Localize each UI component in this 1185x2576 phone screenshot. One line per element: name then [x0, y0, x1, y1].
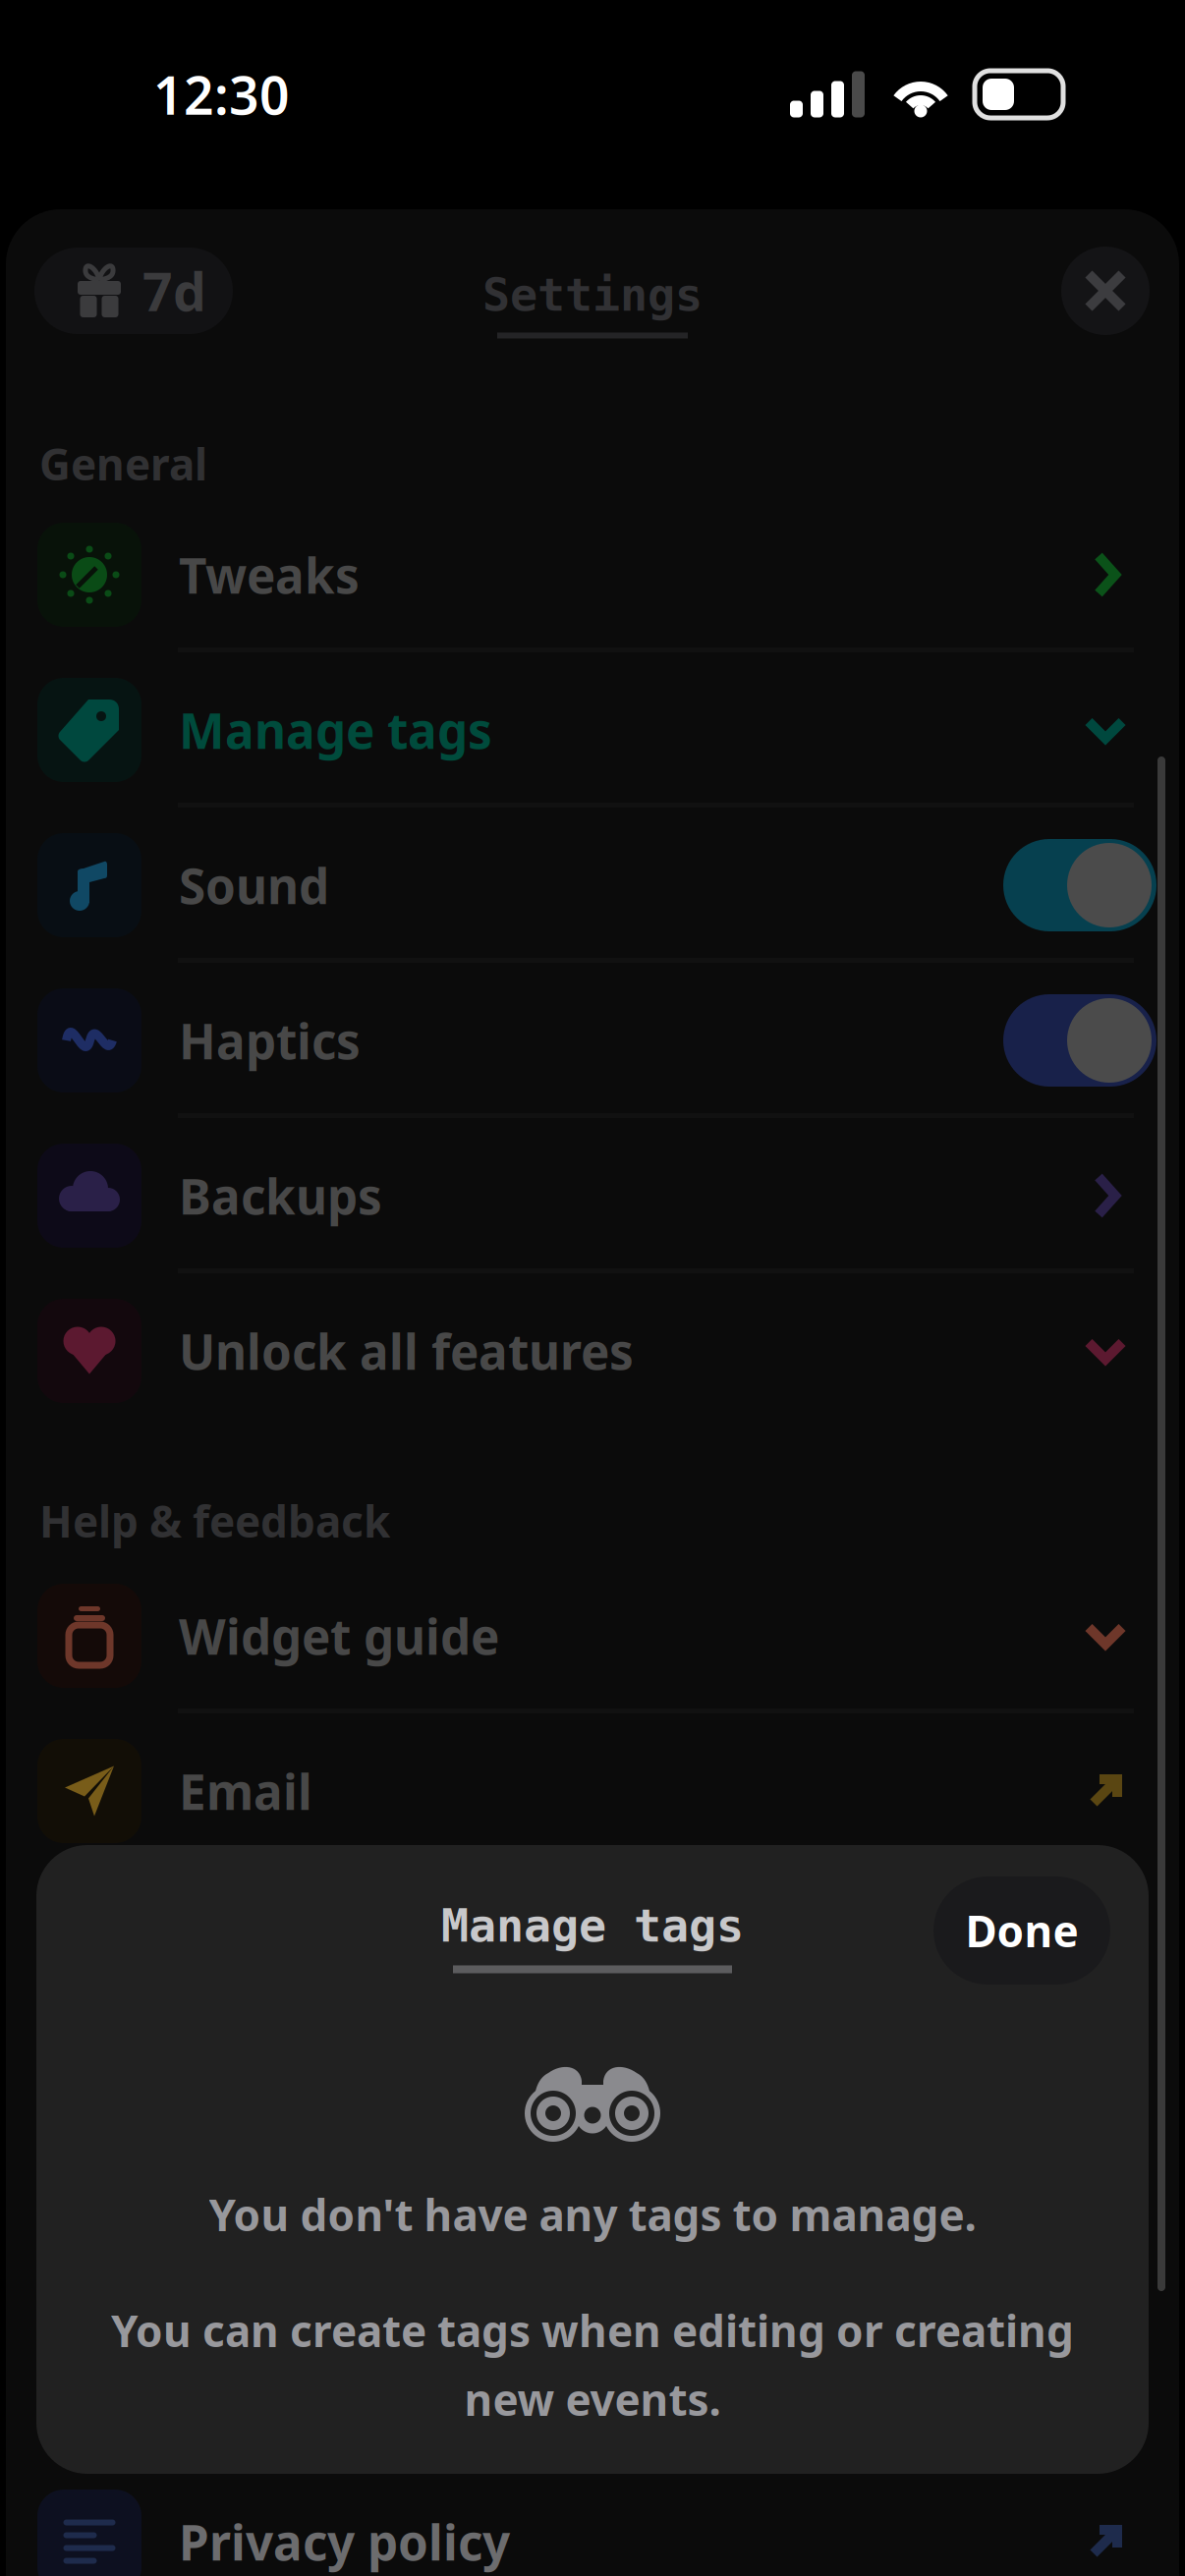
button[interactable]: Widget guide [6, 1558, 1179, 1713]
staticText: Manage tags [179, 698, 492, 762]
staticText: General [39, 435, 207, 492]
button[interactable]: Backups [6, 1118, 1179, 1273]
staticText: You don't have any tags to manage. [209, 2186, 976, 2243]
staticText: Email [179, 1759, 312, 1823]
button[interactable]: Haptics [6, 963, 1179, 1118]
button[interactable]: Sound [6, 808, 1179, 963]
staticText: Help & feedback [39, 1492, 390, 1550]
button[interactable]: Privacy policy [6, 2464, 1179, 2576]
staticText: 12:30 [153, 60, 290, 129]
button[interactable]: 7d [34, 248, 233, 334]
staticText: Tweaks [179, 543, 360, 607]
staticText: Sound [179, 853, 329, 917]
staticText: Privacy policy [179, 2509, 510, 2574]
staticText: Widget guide [179, 1604, 499, 1668]
staticText: Manage tags [441, 1900, 744, 1952]
staticText: Unlock all features [179, 1319, 634, 1383]
staticText: Backups [179, 1163, 382, 1228]
staticText: You can create tags when editing or crea… [111, 2302, 1074, 2359]
staticText: Settings [482, 269, 703, 321]
staticText: new events. [464, 2370, 721, 2428]
button[interactable]: Unlock all features [6, 1273, 1179, 1428]
staticText: Done [965, 1902, 1078, 1959]
staticText: Haptics [179, 1008, 361, 1073]
button[interactable]: Manage tags [6, 652, 1179, 808]
button[interactable]: Tweaks [6, 497, 1179, 652]
button[interactable]: Email [6, 1713, 1179, 1869]
staticText: 7d [142, 256, 206, 326]
button[interactable]: Close [1061, 247, 1150, 335]
button[interactable]: Done [933, 1876, 1110, 1985]
